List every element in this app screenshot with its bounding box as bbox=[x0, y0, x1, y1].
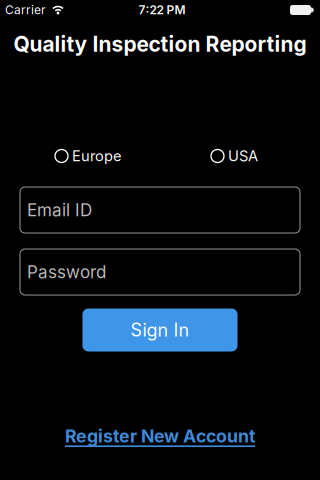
staticText: Carrier bbox=[5, 3, 46, 17]
button[interactable]: Email ID bbox=[20, 187, 300, 233]
staticText: Password bbox=[27, 262, 106, 282]
staticText: Quality Inspection Reporting bbox=[13, 31, 306, 57]
staticText: 7:22 PM bbox=[138, 3, 185, 17]
button[interactable]: Sign In bbox=[82, 308, 237, 351]
button[interactable]: Europe bbox=[55, 147, 122, 165]
staticText: Email ID bbox=[27, 200, 92, 220]
button[interactable]: Password bbox=[20, 249, 300, 295]
button[interactable]: Register New Account bbox=[65, 425, 255, 447]
staticText: Sign In bbox=[130, 319, 189, 341]
button[interactable]: USA bbox=[211, 147, 258, 165]
staticText: Europe bbox=[72, 147, 122, 165]
staticText: Register New Account bbox=[65, 425, 255, 447]
staticText: USA bbox=[228, 147, 258, 165]
